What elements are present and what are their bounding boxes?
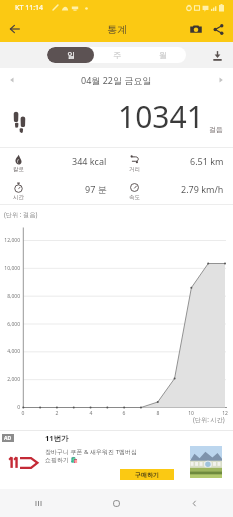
button[interactable]: 월	[140, 47, 186, 63]
staticText: 일	[67, 50, 75, 60]
staticText: 걸음	[209, 125, 223, 134]
staticText: 12	[217, 410, 233, 417]
staticText: 8,000	[0, 293, 20, 300]
button[interactable]: 주	[94, 47, 140, 63]
staticText: 4,000	[0, 348, 20, 355]
button[interactable]: Recents	[0, 489, 77, 517]
button[interactable]: Back	[4, 18, 26, 40]
staticText: 시간	[13, 194, 24, 201]
staticText: 6.51 km	[190, 155, 224, 167]
staticText: 0	[0, 404, 20, 411]
staticText: 6	[116, 410, 132, 417]
staticText: 6,000	[0, 321, 20, 328]
staticText: 344 kcal	[72, 155, 107, 167]
staticText: 쇼핑하기 🛍	[45, 456, 79, 464]
staticText: 10,000	[0, 265, 20, 272]
staticText: 속도	[129, 194, 140, 201]
staticText: 04월 22일 금요일	[81, 74, 152, 86]
staticText: 0	[15, 410, 31, 417]
staticText: KT 11:14	[15, 3, 44, 13]
staticText: 4	[83, 410, 99, 417]
staticText: 12,000	[0, 237, 20, 244]
staticText: 10	[183, 410, 199, 417]
button[interactable]: Back	[155, 489, 233, 517]
staticText: (단위: 시간)	[193, 415, 225, 423]
staticText: 10341	[118, 96, 204, 137]
staticText: 거리	[129, 166, 140, 173]
staticText: 구매하기	[135, 471, 159, 479]
button[interactable]: Home	[77, 489, 155, 517]
staticText: 주	[113, 50, 121, 60]
button[interactable]: Previous day	[4, 72, 20, 88]
staticText: 2.79 km/h	[181, 183, 224, 195]
button[interactable]: Camera	[185, 18, 207, 40]
button[interactable]: AD	[0, 430, 233, 489]
staticText: 8	[150, 410, 166, 417]
button[interactable]: 일	[47, 47, 94, 63]
button[interactable]: 구매하기	[120, 469, 174, 480]
staticText: 장바구니 쿠폰 & 새우워진 T멤버십⭐주 전달	[45, 448, 141, 456]
button[interactable]: Share	[207, 18, 229, 40]
staticText: 2,000	[0, 376, 20, 383]
staticText: 통계	[107, 23, 127, 36]
staticText: (단위 : 걸음)	[4, 210, 38, 218]
staticText: AD	[4, 435, 12, 442]
staticText: 월	[159, 50, 167, 60]
staticText: 97 분	[85, 183, 107, 195]
staticText: 11번가	[45, 433, 69, 443]
button[interactable]: Download	[207, 45, 227, 65]
button[interactable]: Next day	[213, 72, 229, 88]
staticText: 2	[49, 410, 65, 417]
staticText: 칼로	[13, 166, 24, 173]
